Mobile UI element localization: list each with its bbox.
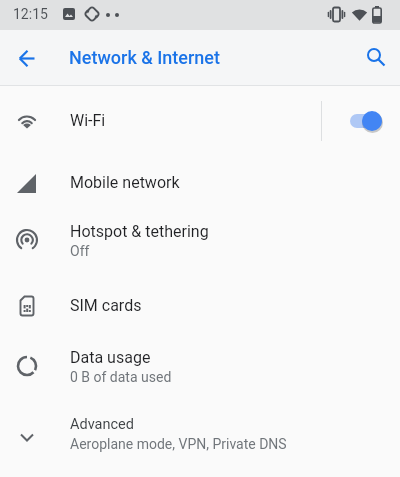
staticText: Wi-Fi [70,111,106,130]
staticText: Advanced [70,416,134,433]
button[interactable]: Data usage [0,337,400,395]
button[interactable]: Mobile network [0,154,400,211]
staticText: Mobile network [70,173,180,192]
button[interactable] [348,109,384,133]
staticText: Network & Internet [69,47,220,68]
staticText: Aeroplane mode, VPN, Private DNS [70,436,287,452]
button[interactable]: Hotspot & tethering [0,211,400,269]
staticText: Hotspot & tethering [70,222,209,241]
button[interactable]: SIM cards [0,277,400,334]
button[interactable] [366,47,386,67]
button[interactable] [19,50,35,67]
staticText: 12:15 [13,6,48,22]
button[interactable]: Wi-Fi [0,92,400,149]
button[interactable]: Advanced [0,404,400,464]
staticText: Data usage [70,348,151,367]
staticText: 0 B of data used [70,369,172,385]
staticText: Off [70,243,90,259]
staticText: SIM cards [70,296,142,315]
